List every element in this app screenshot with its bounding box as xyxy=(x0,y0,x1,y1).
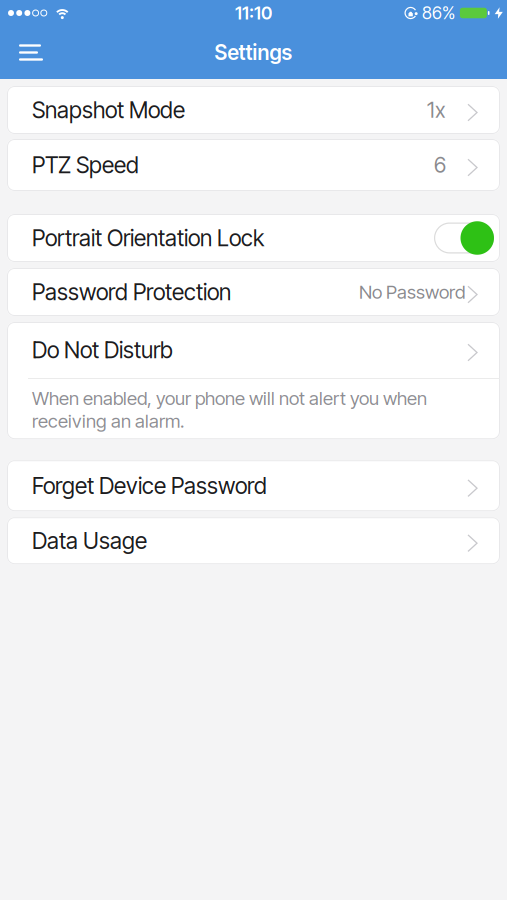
staticText: 6 xyxy=(434,152,446,178)
staticText: PTZ Speed xyxy=(32,151,139,179)
staticText: Password Protection xyxy=(32,278,231,306)
button[interactable]: Snapshot Mode xyxy=(7,86,500,134)
staticText: No Password xyxy=(359,281,465,303)
staticText: Data Usage xyxy=(32,527,147,554)
staticText: 1x xyxy=(427,97,446,123)
staticText: 11:10 xyxy=(235,2,272,24)
staticText: Portrait Orientation Lock xyxy=(32,224,264,252)
button[interactable]: Forget Device Password xyxy=(7,460,500,511)
staticText: Forget Device Password xyxy=(32,472,267,499)
staticText: Settings xyxy=(214,40,292,65)
staticText: 86% xyxy=(422,2,455,23)
staticText: Do Not Disturb xyxy=(32,336,173,364)
staticText: When enabled, your phone will not alert … xyxy=(32,387,427,432)
button[interactable]: Portrait Orientation Lock xyxy=(434,221,494,255)
button[interactable]: Do Not Disturb xyxy=(7,322,500,378)
button[interactable]: PTZ Speed xyxy=(7,139,500,191)
button[interactable]: Menu xyxy=(0,30,59,75)
staticText: Snapshot Mode xyxy=(32,96,185,124)
button[interactable]: Password Protection xyxy=(7,268,500,316)
button[interactable]: Data Usage xyxy=(7,517,500,564)
